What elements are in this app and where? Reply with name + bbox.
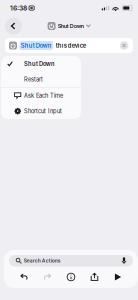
button[interactable]: Run xyxy=(108,271,128,283)
staticText: 16:38 xyxy=(10,4,27,12)
staticText: Search Actions xyxy=(24,258,61,264)
staticText: Restart xyxy=(24,76,43,83)
button[interactable]: Shut Down xyxy=(46,20,92,32)
staticText: Shut Down xyxy=(21,42,52,49)
button[interactable]: Redo xyxy=(37,271,57,283)
staticText: this device xyxy=(56,42,86,49)
button[interactable]: Undo xyxy=(14,271,34,283)
staticText: Ask Each Time xyxy=(24,92,63,99)
staticText: Shut Down xyxy=(24,60,55,67)
button[interactable]: Restart xyxy=(1,72,81,87)
staticText: Shortcut Input xyxy=(24,108,62,115)
button[interactable]: Shortcut Input xyxy=(1,103,81,119)
button[interactable]: Back xyxy=(5,17,22,34)
button[interactable]: Share xyxy=(84,271,104,283)
button[interactable]: Shut Down xyxy=(5,38,133,53)
staticText: Shut Down xyxy=(58,23,84,29)
button[interactable]: Shut Down xyxy=(1,56,81,72)
button[interactable]: Details xyxy=(61,271,81,283)
button[interactable]: Ask Each Time xyxy=(1,88,81,103)
button[interactable]: Search Actions xyxy=(9,255,133,266)
